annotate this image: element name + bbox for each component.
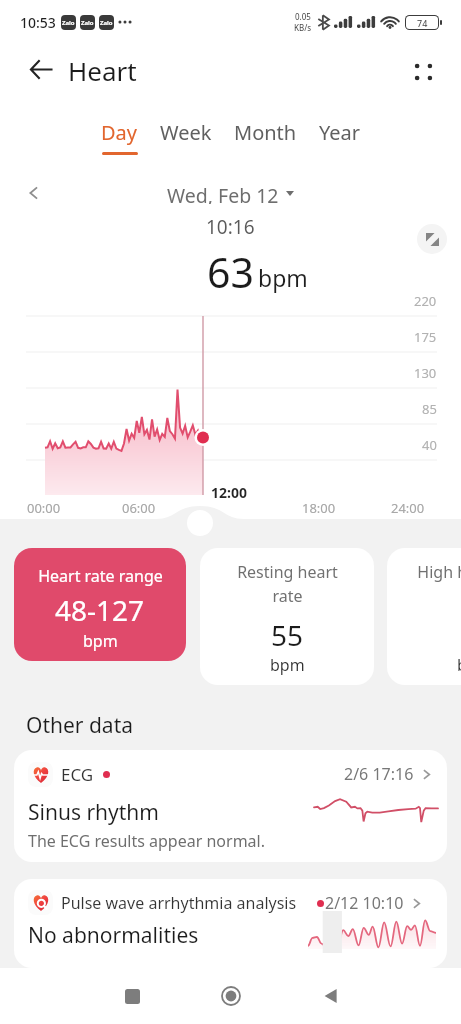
- staticText: 12:00: [211, 483, 247, 502]
- staticText: Pulse wave arrhythmia analysis: [61, 892, 297, 914]
- button[interactable]: More options: [405, 55, 437, 87]
- staticText: The ECG results appear normal.: [28, 830, 266, 852]
- button[interactable]: Week: [149, 113, 223, 161]
- button[interactable]: Back: [307, 972, 355, 1020]
- button[interactable]: Recents: [108, 972, 156, 1020]
- staticText: Zalo: [81, 19, 94, 27]
- staticText: 74: [417, 17, 428, 29]
- staticText: Month: [234, 119, 297, 146]
- staticText: Zalo: [100, 19, 113, 27]
- staticText: bpm: [83, 630, 118, 652]
- button[interactable]: Home: [207, 972, 255, 1020]
- staticText: 220: [414, 292, 437, 310]
- button[interactable]: High heart rate: [387, 548, 461, 685]
- staticText: 10:53: [20, 13, 56, 32]
- staticText: 175: [414, 328, 437, 346]
- staticText: KB/s: [294, 22, 312, 33]
- staticText: High heart rate: [417, 561, 461, 583]
- button[interactable]: Year: [308, 113, 372, 161]
- staticText: Zalo: [62, 19, 75, 27]
- staticText: Wed, Feb 12: [167, 182, 279, 204]
- button[interactable]: Month: [223, 113, 308, 161]
- staticText: Sinus rhythm: [28, 798, 159, 827]
- staticText: 40: [422, 436, 437, 454]
- staticText: 63: [207, 244, 254, 300]
- button[interactable]: Wed, Feb 12: [163, 178, 298, 208]
- staticText: 06:00: [122, 499, 156, 517]
- staticText: Week: [160, 119, 212, 146]
- staticText: 10:16: [206, 214, 255, 240]
- button[interactable]: ECG: [14, 750, 447, 862]
- staticText: ECG: [61, 763, 94, 786]
- staticText: No abnormalities: [28, 921, 199, 950]
- staticText: 130: [414, 364, 437, 382]
- staticText: 0.05: [295, 11, 311, 22]
- staticText: 48-127: [55, 591, 145, 629]
- button[interactable]: Expand chart: [417, 224, 447, 254]
- button[interactable]: Resting heart rate: [200, 548, 374, 685]
- button[interactable]: Pulse wave arrhythmia analysis: [14, 879, 447, 968]
- staticText: Heart rate range: [38, 565, 163, 587]
- staticText: 24:00: [391, 499, 425, 517]
- staticText: Year: [319, 119, 361, 146]
- staticText: Resting heart rate: [237, 561, 338, 607]
- staticText: 2/12 10:10: [325, 892, 404, 914]
- staticText: bpm: [258, 262, 308, 293]
- staticText: 2/6 17:16: [344, 763, 414, 785]
- button[interactable]: Heart rate range: [14, 548, 186, 661]
- staticText: Other data: [26, 711, 133, 740]
- staticText: bpm: [457, 654, 461, 676]
- staticText: 55: [271, 616, 304, 654]
- staticText: 00:00: [27, 499, 61, 517]
- staticText: Heart: [68, 53, 137, 88]
- staticText: Day: [101, 119, 138, 146]
- button[interactable]: Back: [25, 53, 57, 85]
- staticText: 85: [422, 400, 437, 418]
- staticText: 18:00: [302, 499, 336, 517]
- staticText: bpm: [270, 654, 305, 676]
- button[interactable]: Previous day: [20, 179, 48, 207]
- button[interactable]: Day: [90, 113, 149, 161]
